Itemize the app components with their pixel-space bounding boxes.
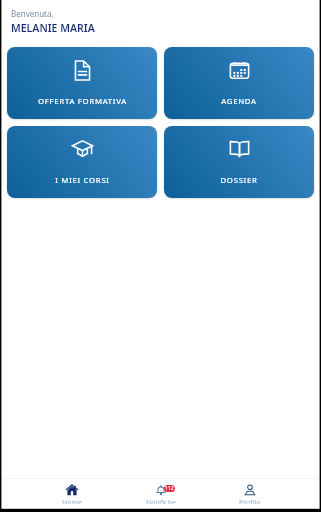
button[interactable]: Profilo — [205, 484, 294, 504]
staticText: I MIEI CORSI — [55, 175, 110, 186]
staticText: MELANIE MARIA — [11, 21, 95, 35]
staticText: Home — [62, 498, 82, 504]
staticText: AGENDA — [221, 96, 257, 107]
button[interactable]: Home — [27, 484, 116, 504]
staticText: Notifiche — [146, 498, 176, 504]
button[interactable]: 112 — [116, 484, 205, 504]
button[interactable]: OFFERTA FORMATIVA — [7, 47, 157, 119]
staticText: Profilo — [239, 498, 261, 504]
staticText: OFFERTA FORMATIVA — [38, 96, 127, 107]
button[interactable]: AGENDA — [164, 47, 314, 119]
staticText: Benvenuta, — [11, 8, 54, 19]
staticText: 112 — [165, 485, 174, 492]
button[interactable]: I MIEI CORSI — [7, 126, 157, 198]
staticText: DOSSIER — [220, 175, 258, 186]
button[interactable]: DOSSIER — [164, 126, 314, 198]
